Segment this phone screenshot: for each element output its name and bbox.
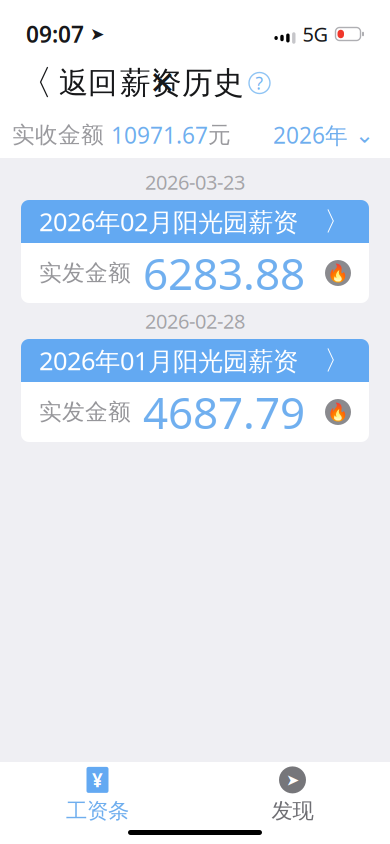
- staticText: 10971.67: [111, 120, 208, 150]
- staticText: 2026年02月阳光园薪资: [39, 205, 298, 238]
- staticText: 实发金额: [39, 259, 131, 287]
- staticText: 2026年: [273, 120, 348, 150]
- button[interactable]: ¥: [0, 763, 195, 827]
- staticText: 2026年01月阳光园薪资: [39, 344, 298, 377]
- staticText: ➤: [90, 24, 105, 44]
- staticText: 2026-03-23: [145, 169, 245, 195]
- staticText: ?: [255, 71, 263, 94]
- staticText: 5G: [302, 21, 328, 47]
- staticText: 实发金额: [39, 398, 131, 426]
- staticText: 元: [208, 121, 231, 149]
- staticText: ⌄: [355, 122, 374, 148]
- button[interactable]: 2026年: [269, 115, 378, 155]
- staticText: 🔥: [327, 402, 349, 422]
- staticText: 〈: [18, 62, 53, 104]
- button[interactable]: 〈: [10, 56, 125, 110]
- staticText: 发现: [271, 798, 313, 824]
- staticText: 6283.88: [143, 244, 305, 302]
- staticText: 2026-02-28: [145, 308, 245, 334]
- staticText: 4687.79: [143, 383, 305, 441]
- button[interactable]: 帮助: [249, 72, 270, 93]
- staticText: 〉: [324, 205, 351, 238]
- staticText: ➤: [286, 771, 299, 789]
- staticText: 〉: [324, 344, 351, 377]
- staticText: 薪资历史: [120, 64, 244, 102]
- staticText: 工资条: [66, 798, 129, 824]
- staticText: 返回: [59, 65, 117, 101]
- staticText: 实收金额: [12, 121, 111, 149]
- button[interactable]: 关闭: [141, 59, 184, 107]
- staticText: 09:07: [26, 19, 84, 49]
- button[interactable]: ➤: [195, 763, 390, 827]
- button[interactable]: 2026年02月阳光园薪资: [21, 200, 369, 303]
- staticText: ¥: [92, 767, 103, 792]
- button[interactable]: 2026年01月阳光园薪资: [21, 339, 369, 442]
- staticText: ✕: [149, 65, 176, 101]
- staticText: 🔥: [327, 263, 349, 283]
